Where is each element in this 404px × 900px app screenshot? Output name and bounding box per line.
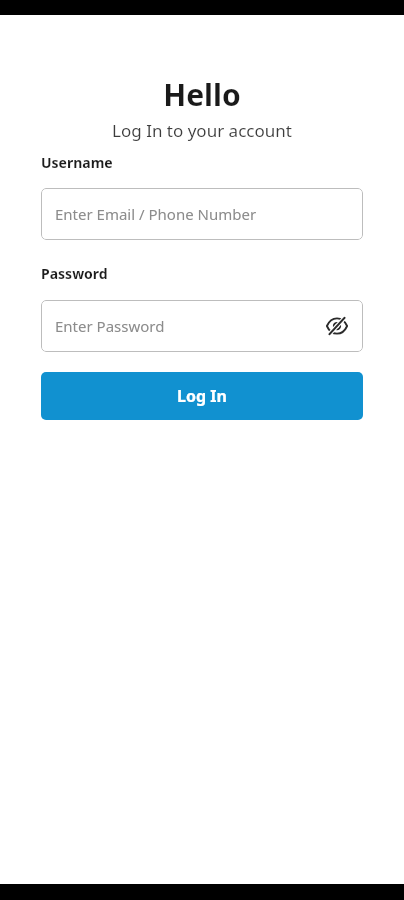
staticText: Username bbox=[41, 153, 113, 172]
staticText: Enter Password bbox=[55, 316, 165, 336]
button[interactable]: Log In bbox=[41, 372, 363, 420]
button[interactable]: Username input bbox=[41, 188, 363, 240]
staticText: Enter Email / Phone Number bbox=[55, 204, 257, 224]
staticText: Log In bbox=[177, 385, 227, 407]
staticText: Hello bbox=[41, 74, 363, 115]
button[interactable]: Show password bbox=[321, 310, 353, 342]
staticText: Password bbox=[41, 264, 108, 283]
staticText: Log In to your account bbox=[41, 119, 363, 142]
button[interactable]: Password input bbox=[41, 300, 363, 352]
